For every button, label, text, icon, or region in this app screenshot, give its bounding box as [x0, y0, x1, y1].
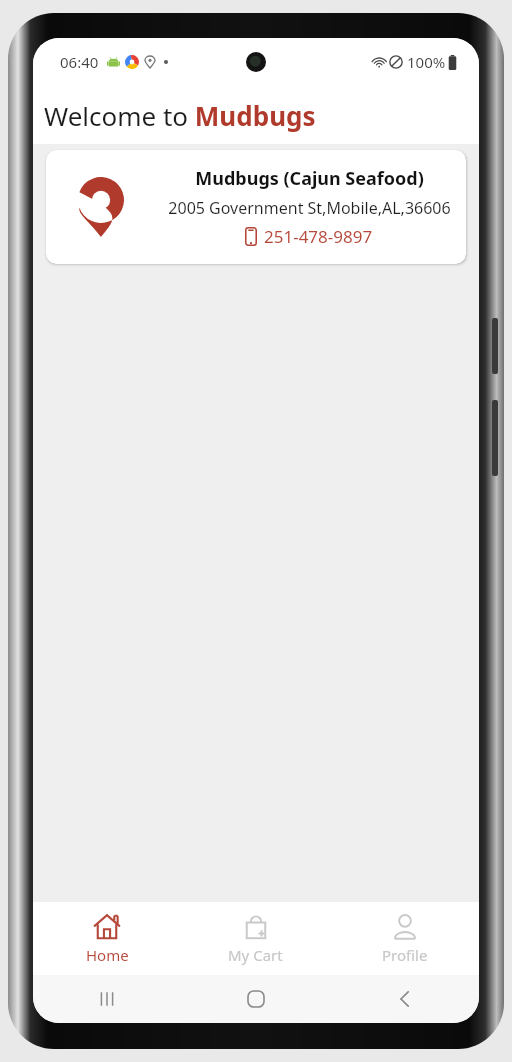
button[interactable]: 251-478-9897: [245, 225, 373, 248]
button[interactable]: My Cart: [181, 902, 330, 975]
staticText: My Cart: [228, 945, 283, 965]
button[interactable]: Mudbugs (Cajun Seafood): [46, 150, 466, 264]
button[interactable]: Profile: [330, 902, 479, 975]
staticText: Profile: [382, 945, 428, 965]
staticText: Welcome to Mudbugs: [44, 98, 316, 133]
button[interactable]: Home: [33, 902, 181, 975]
staticText: 251-478-9897: [264, 225, 373, 248]
staticText: Home: [86, 945, 129, 965]
staticText: 2005 Government St,Mobile,AL,36606: [168, 197, 451, 219]
staticText: Mudbugs (Cajun Seafood): [195, 166, 424, 191]
staticText: 06:40: [60, 52, 99, 72]
button[interactable]: Home: [181, 975, 330, 1023]
button[interactable]: Back: [330, 975, 479, 1023]
button[interactable]: Recent apps: [33, 975, 181, 1023]
staticText: 100%: [407, 52, 446, 72]
